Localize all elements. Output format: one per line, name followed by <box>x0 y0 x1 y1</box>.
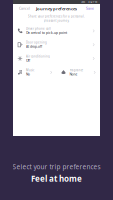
staticText: Door opening <box>26 41 47 44</box>
staticText: 74% 3:32 PM <box>81 0 97 4</box>
staticText: Select your trip preferences <box>12 162 100 171</box>
staticText: Music <box>26 68 34 72</box>
button[interactable]: Fragrance <box>56 65 100 79</box>
staticText: At drop-off <box>26 44 42 49</box>
button[interactable]: Music <box>13 65 56 79</box>
button[interactable]: Driver phone call <box>13 24 100 38</box>
button[interactable]: Save <box>84 4 100 13</box>
staticText: On arrival to pick-up point <box>26 31 67 35</box>
staticText: Off <box>26 58 30 63</box>
button[interactable]: Cancel <box>13 4 32 13</box>
staticText: Save <box>86 6 94 11</box>
button[interactable]: Door opening <box>13 38 100 52</box>
staticText: No <box>26 72 30 76</box>
staticText: Driver phone call <box>26 27 51 31</box>
staticText: Share your preferences for a personal, <box>28 14 85 18</box>
staticText: Feel at home <box>31 173 82 184</box>
staticText: Cancel <box>19 6 30 11</box>
staticText: Air conditioning <box>26 54 50 58</box>
staticText: pleasant journey. <box>43 19 69 23</box>
staticText: None <box>69 72 77 76</box>
staticText: Journey preferences <box>36 6 77 11</box>
button[interactable]: Air conditioning <box>13 52 100 65</box>
staticText: Fragrance <box>69 68 83 72</box>
